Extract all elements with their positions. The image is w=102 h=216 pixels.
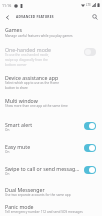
button[interactable]: Panic mode — [0, 202, 102, 216]
staticText: Use two separate accounts for the same a… — [5, 193, 71, 197]
staticText: To use the one-handed mode, swipe up dia… — [5, 53, 50, 67]
staticText: Games — [5, 26, 22, 33]
button[interactable]: Toggle on — [84, 144, 96, 152]
staticText: LTE — [86, 3, 91, 7]
staticText: On — [5, 128, 10, 132]
staticText: Panic mode — [5, 203, 34, 210]
button[interactable]: Swipe to call or send messages — [0, 164, 102, 185]
staticText: One-handed mode — [5, 46, 51, 53]
staticText: Swipe to call or send messages — [5, 165, 80, 172]
button[interactable]: Easy mute — [0, 142, 102, 164]
button[interactable]: Toggle on — [84, 122, 96, 130]
button[interactable]: Back — [0, 10, 14, 24]
staticText: On — [5, 172, 10, 176]
staticText: Device assistance app — [5, 74, 59, 81]
button[interactable]: Games — [0, 24, 102, 45]
staticText: Easy mute — [5, 143, 31, 150]
staticText: On — [5, 150, 10, 154]
button[interactable]: Dual Messenger — [0, 185, 102, 202]
button[interactable]: Device assistance app — [0, 72, 102, 95]
staticText: Manage useful features while you play ga… — [5, 34, 73, 38]
button[interactable]: Multi window — [0, 95, 102, 120]
staticText: ADVANCED FEATURES — [16, 15, 54, 19]
button[interactable]: Toggle on — [84, 166, 96, 174]
button[interactable]: Toggle off — [84, 48, 96, 56]
button[interactable]: Search — [88, 10, 102, 24]
button[interactable]: One-handed mode — [0, 45, 102, 72]
staticText: Select which app to use as the Home butt… — [5, 81, 60, 90]
staticText: Dual Messenger — [5, 186, 45, 193]
staticText: Smart alert — [5, 121, 33, 128]
staticText: 11:16 — [2, 3, 12, 8]
staticText: Show more than one app at the same time — [5, 104, 68, 108]
staticText: Tell emergency number 112 and send SOS m… — [5, 210, 83, 214]
staticText: Multi window — [5, 97, 38, 104]
button[interactable]: Smart alert — [0, 120, 102, 142]
